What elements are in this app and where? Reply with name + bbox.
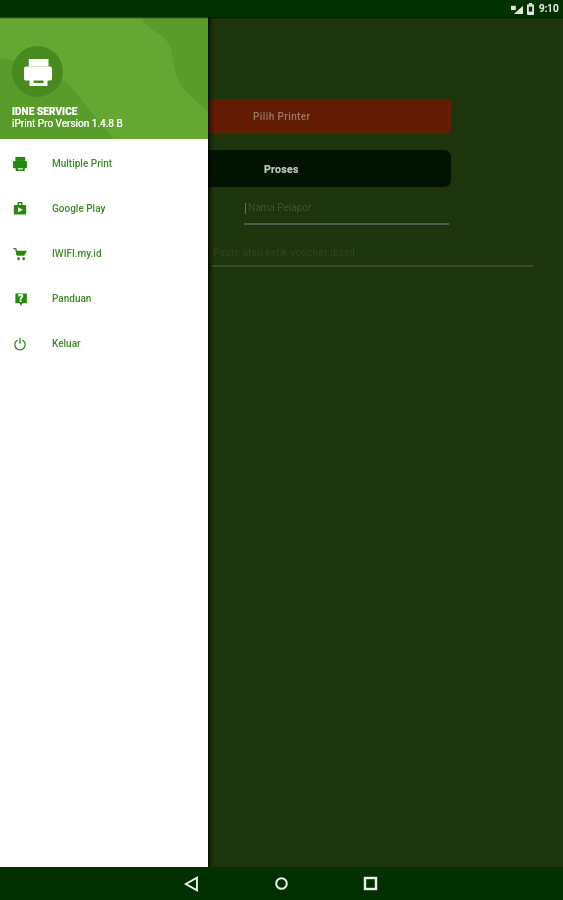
staticText: ? xyxy=(18,292,24,305)
button[interactable]: Google Play xyxy=(0,186,208,231)
staticText: IDNE SERVICE xyxy=(12,106,78,118)
staticText: Panduan xyxy=(52,293,92,305)
staticText: IWIFI.my.id xyxy=(52,248,102,260)
button[interactable]: IWIFI.my.id xyxy=(0,231,208,276)
button[interactable]: Multiple Print xyxy=(0,141,208,186)
button[interactable]: ? xyxy=(0,276,208,321)
staticText: iPrint Pro Version 1.4.8 B xyxy=(12,118,123,130)
staticText: Paste atau ketik voucher disini xyxy=(213,246,355,258)
button[interactable]: Pilih Printer xyxy=(112,99,451,134)
staticText: Nama Pelapor xyxy=(248,202,312,214)
staticText: Pilih Printer xyxy=(253,111,311,123)
staticText: Google Play xyxy=(52,203,106,215)
button[interactable]: Back xyxy=(173,867,209,900)
button[interactable]: Home xyxy=(263,867,299,900)
staticText: Multiple Print xyxy=(52,158,113,170)
staticText: Keluar xyxy=(52,338,81,350)
button[interactable]: Keluar xyxy=(0,321,208,366)
staticText: Proses xyxy=(264,163,299,175)
staticText: 9:10 xyxy=(539,3,559,15)
button[interactable]: Proses xyxy=(112,150,451,187)
button[interactable]: Recent apps xyxy=(352,867,388,900)
